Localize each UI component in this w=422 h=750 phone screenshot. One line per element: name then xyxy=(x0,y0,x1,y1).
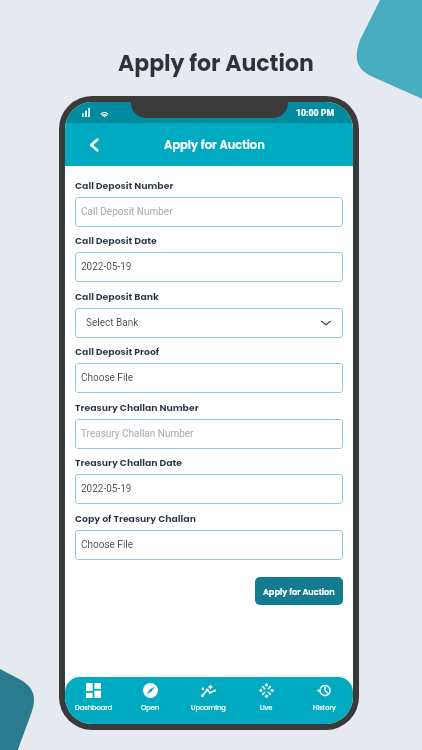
button[interactable]: Upcoming xyxy=(179,677,237,724)
staticText: Treasury Challan Number xyxy=(81,428,194,440)
staticText: Apply for Auction xyxy=(118,48,314,79)
button[interactable]: Choose File xyxy=(75,530,343,560)
button[interactable]: Dashboard xyxy=(65,677,122,724)
button[interactable]: Live xyxy=(237,677,295,724)
button[interactable]: Back xyxy=(84,135,104,155)
button[interactable]: Open xyxy=(122,677,179,724)
staticText: Call Deposit Date xyxy=(75,234,157,247)
staticText: Open xyxy=(141,703,160,712)
staticText: Dashboard xyxy=(75,703,113,712)
staticText: Treasury Challan Date xyxy=(75,456,183,469)
staticText: 10:00 PM xyxy=(296,108,335,118)
staticText: 2022-05-19 xyxy=(81,483,132,495)
button[interactable]: Choose File xyxy=(75,363,343,393)
staticText: Choose File xyxy=(81,372,134,384)
button[interactable]: 2022-05-19 xyxy=(75,252,343,282)
button[interactable]: 2022-05-19 xyxy=(75,474,343,504)
button[interactable]: Apply for Auction xyxy=(255,577,343,605)
button[interactable]: Call Deposit Number xyxy=(75,197,343,227)
button[interactable]: History xyxy=(295,677,353,724)
staticText: Call Deposit Proof xyxy=(75,345,160,358)
staticText: History xyxy=(313,703,336,712)
staticText: Upcoming xyxy=(191,703,226,712)
staticText: Apply for Auction xyxy=(263,586,335,597)
staticText: Treasury Challan Number xyxy=(75,401,199,414)
staticText: Call Deposit Number xyxy=(75,179,174,192)
staticText: Call Deposit Number xyxy=(81,206,173,218)
staticText: Choose File xyxy=(81,539,134,551)
button[interactable]: Treasury Challan Number xyxy=(75,419,343,449)
button[interactable]: Select Bank xyxy=(75,308,343,338)
staticText: 2022-05-19 xyxy=(81,261,132,273)
staticText: Live xyxy=(260,703,273,712)
staticText: Select Bank xyxy=(86,317,139,329)
staticText: Copy of Treasury Challan xyxy=(75,512,196,525)
staticText: Apply for Auction xyxy=(164,137,265,153)
staticText: Call Deposit Bank xyxy=(75,290,159,303)
